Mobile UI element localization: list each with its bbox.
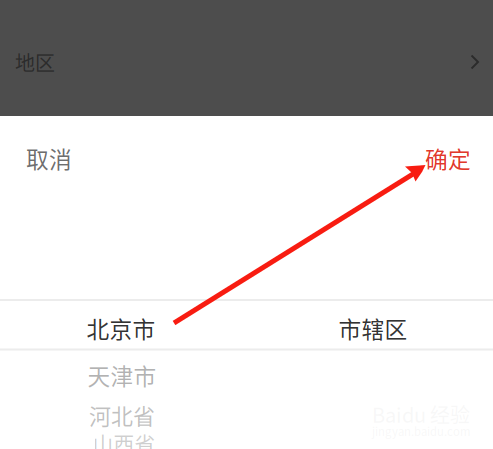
staticText: 山西省 xyxy=(92,428,155,449)
button[interactable]: 市辖区 xyxy=(250,303,493,352)
staticText: 取消 xyxy=(26,142,72,174)
staticText: 市辖区 xyxy=(338,312,407,344)
button[interactable]: 取消 xyxy=(0,134,126,182)
staticText: 北京市 xyxy=(86,312,155,344)
button[interactable]: 确定 xyxy=(371,134,493,182)
button[interactable]: 北京市 xyxy=(0,303,244,352)
staticText: 地区 xyxy=(15,47,55,76)
staticText: 天津市 xyxy=(87,359,156,391)
button[interactable]: 地区 xyxy=(0,36,493,88)
staticText: 河北省 xyxy=(89,399,155,431)
staticText: 确定 xyxy=(425,142,471,174)
